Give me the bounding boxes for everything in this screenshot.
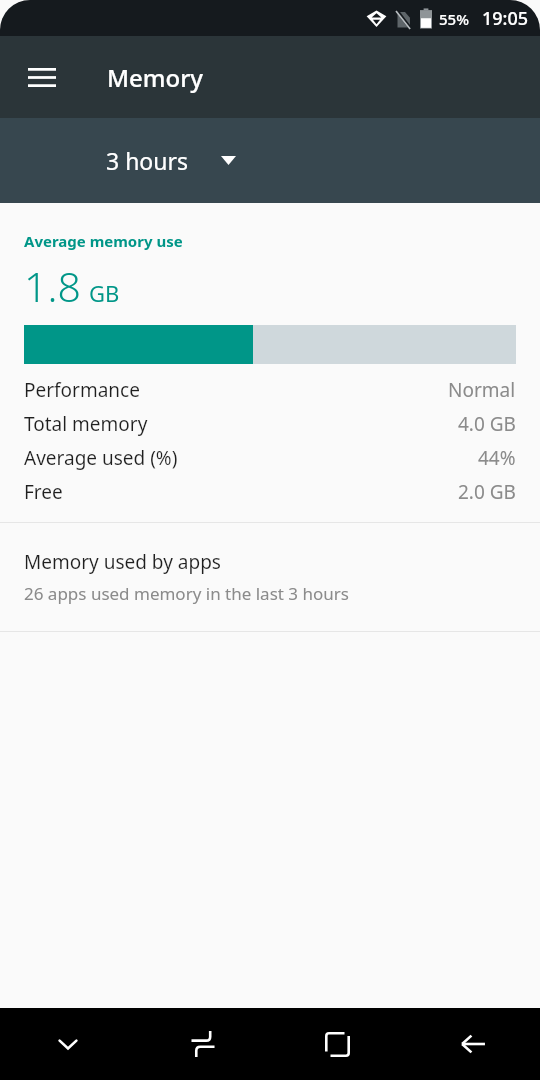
staticText: 3 hours xyxy=(106,145,188,176)
button[interactable]: 3 hours xyxy=(80,133,262,188)
button[interactable]: Home xyxy=(270,1008,405,1080)
staticText: 4.0 GB xyxy=(458,411,516,437)
button[interactable]: Open navigation menu xyxy=(14,49,70,105)
staticText: Free xyxy=(24,479,63,505)
staticText: Normal xyxy=(448,377,516,403)
staticText: 2.0 GB xyxy=(458,479,516,505)
staticText: Memory used by apps xyxy=(24,549,221,575)
staticText: 19:05 xyxy=(482,6,529,31)
button[interactable]: Back xyxy=(405,1008,540,1080)
staticText: 55% xyxy=(439,9,469,29)
staticText: GB xyxy=(89,278,120,308)
staticText: 1.8 xyxy=(24,258,81,314)
staticText: Performance xyxy=(24,377,140,403)
button[interactable]: Switch input method xyxy=(135,1008,270,1080)
staticText: Total memory xyxy=(24,411,148,437)
staticText: Average used (%) xyxy=(24,445,178,471)
staticText: 44% xyxy=(478,445,516,471)
button[interactable]: Hide keyboard xyxy=(0,1008,135,1080)
staticText: Average memory use xyxy=(24,231,183,251)
button[interactable]: Memory used by apps xyxy=(0,523,540,631)
staticText: 26 apps used memory in the last 3 hours xyxy=(24,582,349,605)
staticText: Memory xyxy=(107,61,204,94)
